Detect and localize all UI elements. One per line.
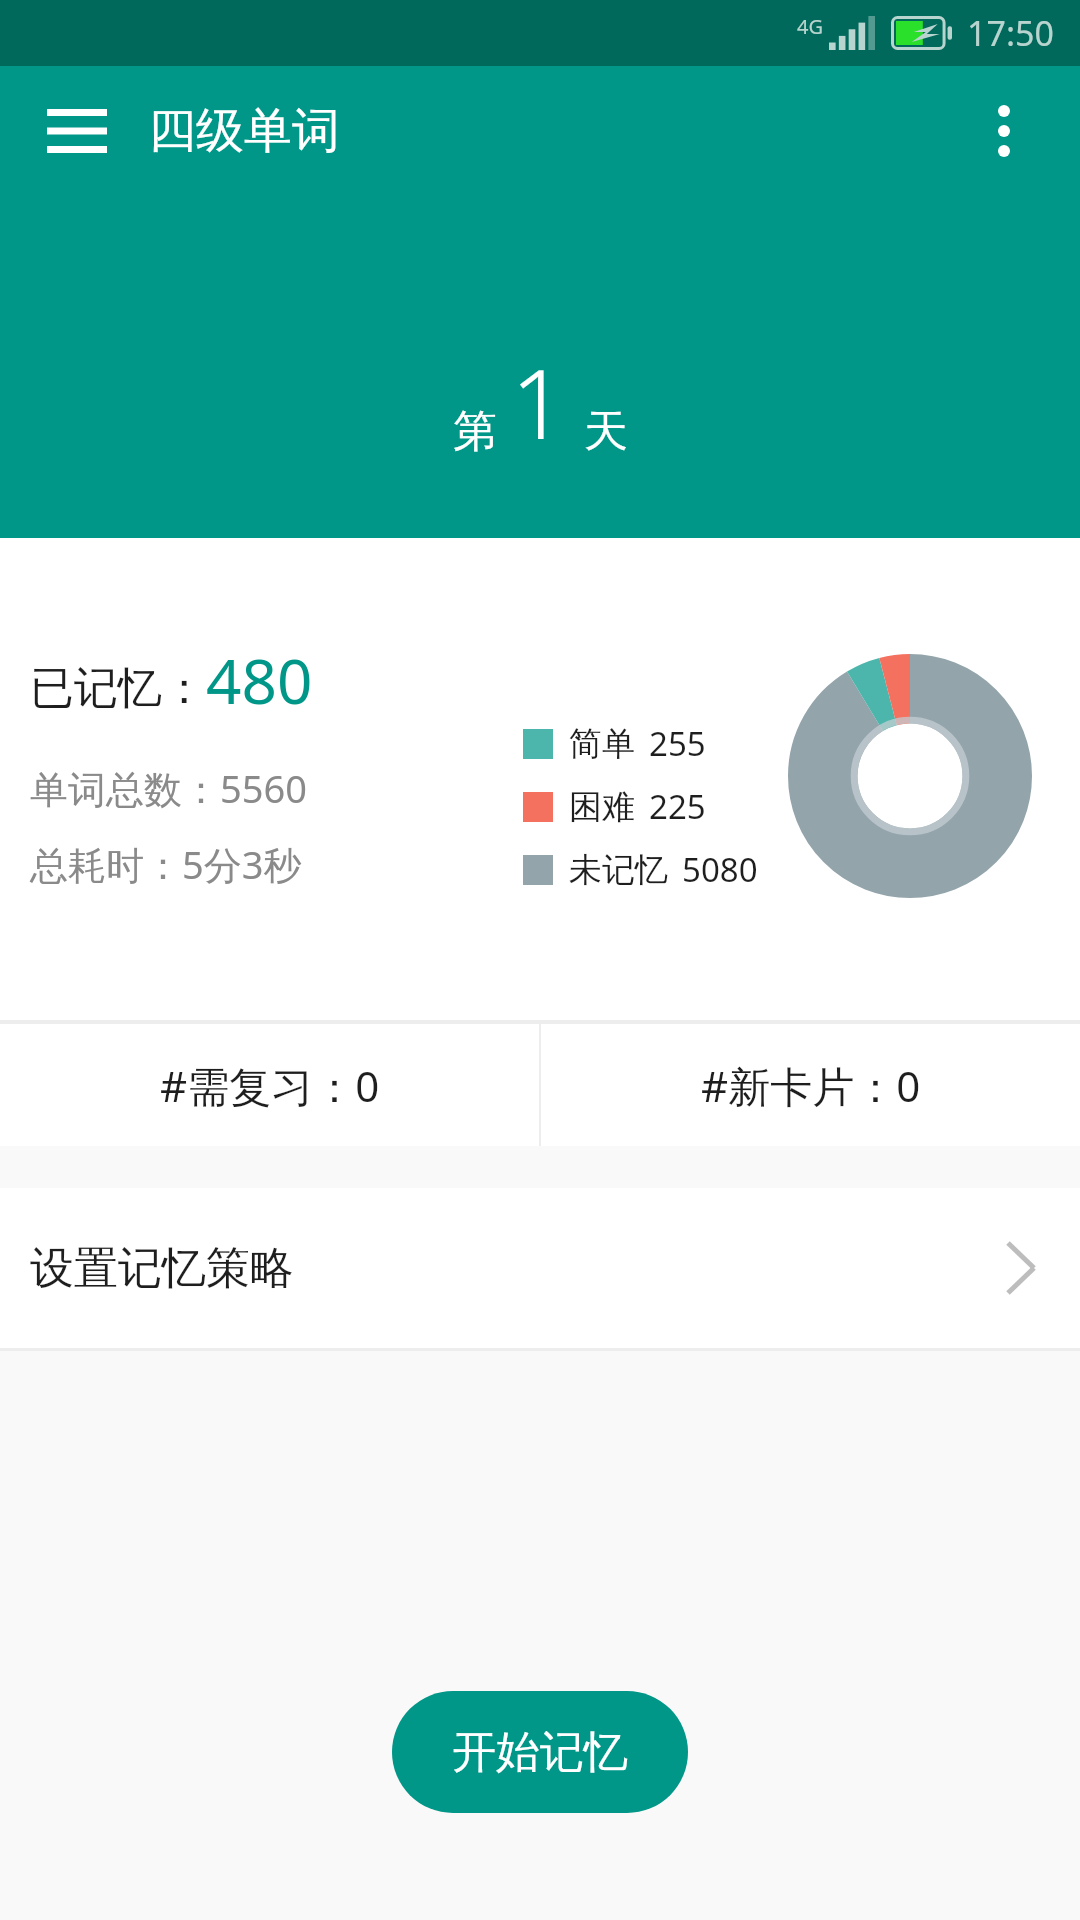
staticText: 5080 <box>682 847 758 892</box>
button[interactable]: 开始记忆 <box>392 1691 688 1813</box>
staticText: 480 <box>206 638 313 722</box>
staticText: 总耗时：5分3秒 <box>30 838 302 890</box>
staticText: 未记忆 <box>569 849 668 891</box>
staticText: 17:50 <box>967 10 1054 56</box>
staticText: 255 <box>649 721 706 766</box>
button[interactable]: More options <box>962 89 1046 173</box>
button[interactable]: Open navigation menu <box>34 88 120 174</box>
staticText: 天 <box>584 404 628 459</box>
staticText: 225 <box>649 784 706 829</box>
staticText: 困难 <box>569 786 635 828</box>
staticText: 四级单词 <box>148 101 340 161</box>
staticText: 4G <box>797 13 823 40</box>
button[interactable]: 设置记忆策略 <box>0 1188 1080 1348</box>
staticText: 单词总数：5560 <box>30 762 307 814</box>
staticText: 已记忆： <box>30 661 206 716</box>
button[interactable]: #需复习：0 <box>0 1024 539 1146</box>
staticText: 简单 <box>569 723 635 765</box>
staticText: #新卡片：0 <box>701 1057 921 1114</box>
staticText: 开始记忆 <box>452 1725 628 1780</box>
staticText: 第 <box>453 404 497 459</box>
staticText: 1 <box>511 336 566 467</box>
button[interactable]: #新卡片：0 <box>541 1024 1080 1146</box>
staticText: 设置记忆策略 <box>30 1241 294 1296</box>
staticText: #需复习：0 <box>160 1057 380 1114</box>
